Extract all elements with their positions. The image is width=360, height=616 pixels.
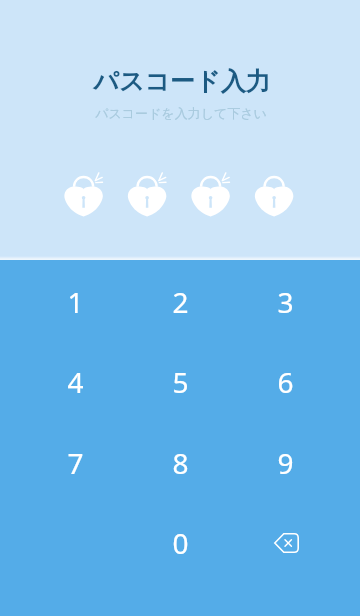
staticText: 8 [172, 444, 189, 482]
staticText: 6 [277, 363, 294, 401]
button[interactable]: 3 [233, 262, 338, 342]
staticText: 3 [277, 283, 294, 321]
button[interactable]: 8 [128, 423, 233, 503]
button[interactable]: 2 [128, 262, 233, 342]
button[interactable]: Delete [233, 503, 338, 583]
staticText: パスコードを入力して下さい [95, 105, 267, 121]
staticText: 4 [67, 363, 84, 401]
staticText: 7 [67, 444, 84, 482]
staticText: パスコード入力 [93, 66, 271, 97]
button[interactable]: 6 [233, 342, 338, 422]
staticText: 5 [172, 363, 189, 401]
button[interactable]: 4 [23, 342, 128, 422]
button[interactable]: 7 [23, 423, 128, 503]
staticText: 0 [172, 524, 189, 562]
button[interactable]: 1 [23, 262, 128, 342]
staticText: 9 [277, 444, 294, 482]
staticText: 2 [172, 283, 189, 321]
button[interactable]: 5 [128, 342, 233, 422]
button[interactable]: 0 [128, 503, 233, 583]
button[interactable]: 9 [233, 423, 338, 503]
staticText: 1 [67, 283, 84, 321]
